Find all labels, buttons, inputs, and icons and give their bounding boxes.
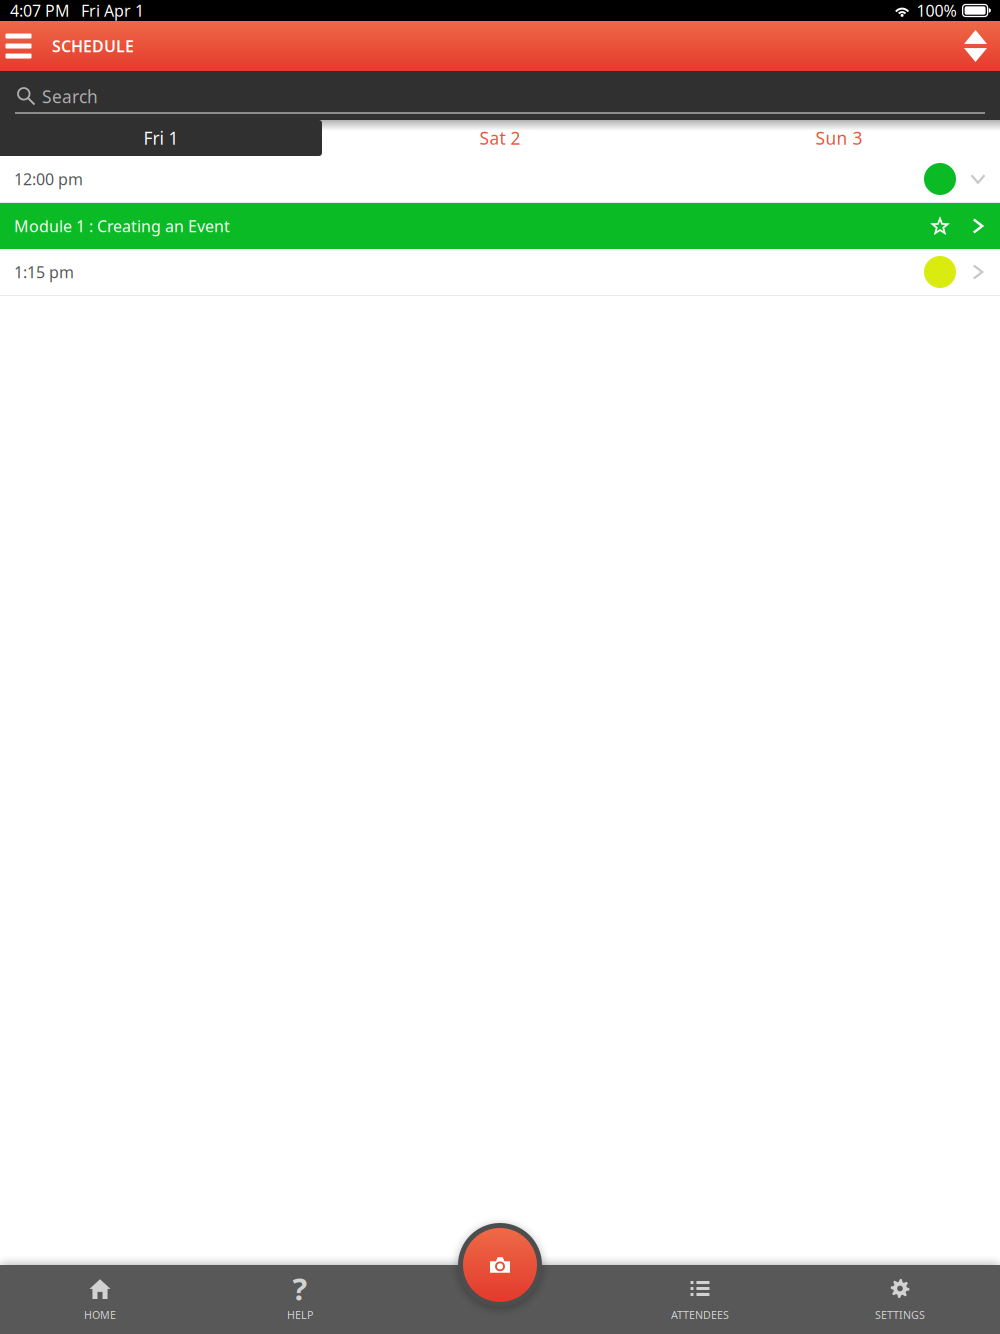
button[interactable]: ATTENDEES <box>600 1265 800 1334</box>
staticText: SETTINGS <box>875 1308 925 1322</box>
staticText: Fri 1 <box>143 126 178 149</box>
staticText: Sun 3 <box>815 126 862 149</box>
staticText: SCHEDULE <box>52 35 134 57</box>
button[interactable]: Camera <box>458 1223 542 1307</box>
staticText: Sat 2 <box>479 126 520 149</box>
button[interactable]: SETTINGS <box>800 1265 1000 1334</box>
button[interactable]: Module 1 : Creating an Event <box>0 203 1000 249</box>
button[interactable]: Sat 2 <box>322 120 678 156</box>
button[interactable]: 1:15 pm <box>0 249 1000 296</box>
staticText: HELP <box>287 1308 313 1322</box>
button[interactable]: HOME <box>0 1265 200 1334</box>
button[interactable]: Menu <box>0 21 37 71</box>
button[interactable]: 12:00 pm <box>0 156 1000 203</box>
staticText: 4:07 PM <box>10 0 70 21</box>
staticText: HOME <box>84 1308 116 1322</box>
button[interactable]: ? <box>200 1265 400 1334</box>
staticText: Fri Apr 1 <box>81 0 144 21</box>
staticText: Search <box>42 85 98 108</box>
button[interactable]: Sort order <box>953 21 998 71</box>
staticText: 100% <box>917 0 957 21</box>
staticText: ? <box>292 1268 307 1309</box>
staticText: 12:00 pm <box>14 168 83 190</box>
staticText: Module 1 : Creating an Event <box>14 215 230 237</box>
button[interactable]: Sun 3 <box>678 120 1000 156</box>
staticText: ATTENDEES <box>671 1308 729 1322</box>
staticText: 1:15 pm <box>14 261 74 283</box>
button[interactable]: Fri 1 <box>0 120 322 156</box>
button[interactable]: Search <box>0 71 1000 120</box>
